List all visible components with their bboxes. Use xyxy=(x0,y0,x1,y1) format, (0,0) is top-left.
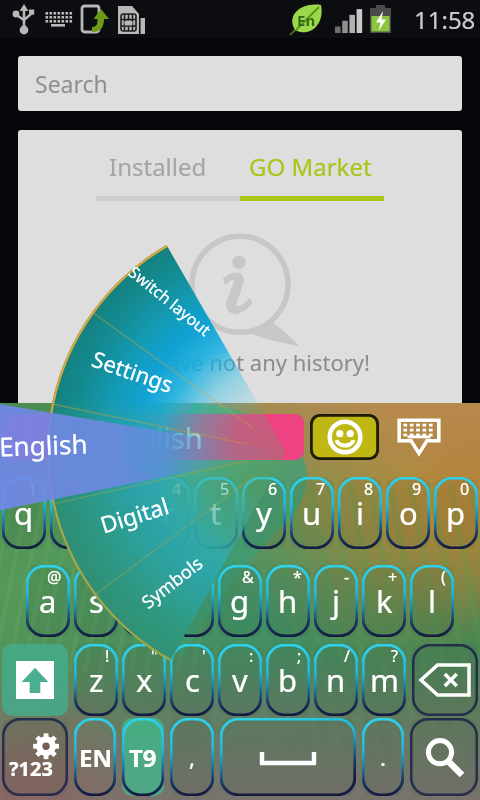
button[interactable]: t xyxy=(194,477,238,549)
staticText: Installed xyxy=(109,150,207,183)
button[interactable]: Switch layout xyxy=(78,220,262,382)
staticText: n xyxy=(326,659,346,701)
button[interactable]: , xyxy=(170,718,214,796)
button[interactable]: y xyxy=(242,477,286,549)
staticText: GO Market xyxy=(249,150,372,183)
staticText: Switch layout xyxy=(124,261,216,341)
button[interactable]: m xyxy=(362,644,406,716)
button[interactable]: EN xyxy=(74,718,116,796)
button[interactable]: Hide keyboard xyxy=(386,414,452,460)
staticText: 3 xyxy=(124,478,134,500)
staticText: g xyxy=(230,580,250,622)
staticText: z xyxy=(89,659,104,701)
staticText: 1 xyxy=(28,478,38,500)
staticText: i xyxy=(356,492,364,534)
staticText: ? xyxy=(391,645,398,667)
staticText: t xyxy=(210,492,222,534)
button[interactable]: c xyxy=(170,644,214,716)
button[interactable]: v xyxy=(218,644,262,716)
staticText: & xyxy=(242,566,254,588)
button[interactable]: i xyxy=(338,477,382,549)
staticText: ( xyxy=(441,566,446,588)
button[interactable]: l xyxy=(410,565,454,637)
staticText: @ xyxy=(47,566,62,588)
staticText: o xyxy=(399,492,418,534)
staticText: EN xyxy=(79,741,112,774)
staticText: $ xyxy=(148,566,158,588)
button[interactable]: Digital xyxy=(32,463,236,565)
staticText: ' xyxy=(202,645,206,667)
staticText: p xyxy=(446,492,466,534)
button[interactable]: h xyxy=(266,565,310,637)
staticText: Search xyxy=(35,68,108,99)
button[interactable]: ?123 xyxy=(2,718,68,796)
button[interactable]: Installed xyxy=(101,150,215,183)
staticText: Settings xyxy=(88,343,178,399)
button[interactable]: u xyxy=(290,477,334,549)
button[interactable]: Delete xyxy=(412,644,478,716)
button[interactable]: x xyxy=(122,644,166,716)
button[interactable]: Emoji xyxy=(310,414,379,460)
button[interactable]: o xyxy=(386,477,430,549)
button[interactable]: e xyxy=(98,477,142,549)
staticText: , xyxy=(189,742,195,772)
staticText: v xyxy=(232,659,248,701)
button[interactable]: f xyxy=(170,565,214,637)
staticText: # xyxy=(99,566,110,588)
staticText: d xyxy=(134,580,154,622)
button[interactable]: p xyxy=(434,477,478,549)
staticText: " xyxy=(151,645,158,667)
button[interactable]: j xyxy=(314,565,358,637)
button[interactable]: English xyxy=(0,421,134,467)
staticText: English xyxy=(0,425,89,463)
staticText: ; xyxy=(297,645,302,667)
staticText: x xyxy=(136,659,153,701)
button[interactable]: GO Market xyxy=(241,150,380,183)
staticText: f xyxy=(187,580,198,622)
button[interactable]: Search xyxy=(410,718,478,796)
staticText: k xyxy=(376,580,393,622)
button[interactable]: s xyxy=(74,565,118,637)
button[interactable]: n xyxy=(314,644,358,716)
button[interactable]: g xyxy=(218,565,262,637)
button[interactable]: Search xyxy=(18,56,462,111)
staticText: 4 xyxy=(172,478,182,500)
staticText: 2 xyxy=(76,478,86,500)
staticText: 0 xyxy=(460,478,470,500)
button[interactable]: q xyxy=(2,477,46,549)
button[interactable]: d xyxy=(122,565,166,637)
staticText: 7 xyxy=(316,478,326,500)
button[interactable]: w xyxy=(50,477,94,549)
button[interactable]: k xyxy=(362,565,406,637)
button[interactable]: T9 xyxy=(122,718,164,796)
staticText: 8 xyxy=(364,478,374,500)
staticText: u xyxy=(302,492,322,534)
button[interactable]: a xyxy=(26,565,70,637)
staticText: + xyxy=(388,566,398,588)
staticText: j xyxy=(332,580,340,622)
staticText: ! xyxy=(105,645,110,667)
button[interactable]: English xyxy=(2,414,304,460)
staticText: a xyxy=(39,580,57,622)
staticText: ?123 xyxy=(9,755,53,782)
staticText: * xyxy=(293,566,302,588)
staticText: r xyxy=(162,492,175,534)
button[interactable]: Symbols xyxy=(79,502,265,662)
staticText: . xyxy=(380,742,386,772)
staticText: q xyxy=(14,492,34,534)
staticText: c xyxy=(185,659,200,701)
staticText: / xyxy=(344,645,350,667)
staticText: Symbols xyxy=(136,550,208,614)
staticText: - xyxy=(344,566,350,588)
button[interactable]: Shift xyxy=(2,644,68,716)
button[interactable]: r xyxy=(146,477,190,549)
button[interactable]: . xyxy=(362,718,404,796)
staticText: m xyxy=(370,659,399,701)
staticText: 6 xyxy=(268,478,278,500)
button[interactable]: z xyxy=(74,644,118,716)
staticText: 11:58 xyxy=(414,3,476,36)
button[interactable] xyxy=(220,718,356,796)
button[interactable]: Settings xyxy=(31,317,235,425)
staticText: T9 xyxy=(129,741,157,774)
button[interactable]: b xyxy=(266,644,310,716)
